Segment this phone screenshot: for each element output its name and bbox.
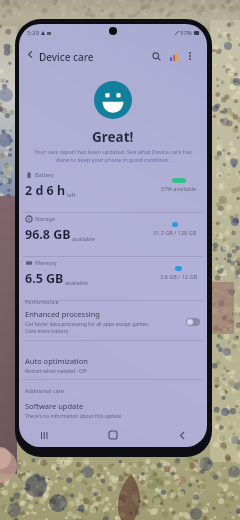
button[interactable]: Search <box>147 47 165 65</box>
staticText: Your care report has been updated. See w… <box>34 148 192 164</box>
staticText: Restart when needed : Off <box>25 368 87 375</box>
staticText: 57% <box>180 29 192 37</box>
button[interactable]: Software update <box>19 398 207 422</box>
staticText: Additional care <box>25 387 64 394</box>
staticText: 6.5 GB <box>25 270 64 287</box>
staticText: 57% available <box>161 185 197 192</box>
button[interactable]: Home <box>104 426 122 444</box>
button[interactable]: Auto optimization <box>19 353 207 377</box>
staticText: Great! <box>92 128 134 146</box>
staticText: 2 d 6 h <box>25 182 66 199</box>
button[interactable]: Battery <box>19 169 207 212</box>
button[interactable]: More options <box>181 47 199 65</box>
button[interactable]: Usage chart <box>165 47 183 65</box>
staticText: There's no information about this update <box>25 413 122 420</box>
button[interactable]: Memory <box>19 257 207 300</box>
staticText: Software update <box>25 401 84 411</box>
staticText: available <box>72 235 95 242</box>
button[interactable]: Back <box>173 426 191 444</box>
staticText: Memory <box>35 259 57 266</box>
staticText: available <box>65 279 88 286</box>
button[interactable]: Storage <box>19 213 207 256</box>
staticText: left <box>67 191 76 198</box>
staticText: 3.9 GB / 12 GB <box>160 273 197 280</box>
staticText: 5:29 <box>27 29 39 37</box>
staticText: 96.8 GB <box>25 226 71 243</box>
staticText: Performance <box>25 298 59 305</box>
button[interactable]: Enhanced processing <box>19 307 207 337</box>
staticText: Auto optimization <box>25 356 88 366</box>
staticText: Enhanced processing <box>25 309 100 319</box>
staticText: Battery <box>35 171 54 178</box>
button[interactable]: Navigate up <box>21 45 39 63</box>
staticText: Storage <box>35 215 56 222</box>
button[interactable]: Recent apps <box>35 426 53 444</box>
staticText: 31.2 GB / 128 GB <box>153 229 197 236</box>
staticText: Get faster data processing for all apps … <box>25 321 150 335</box>
staticText: Device care <box>39 50 94 64</box>
